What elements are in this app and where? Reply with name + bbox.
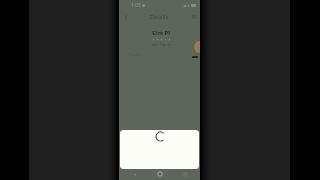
staticText: Details [150,13,169,20]
button[interactable]: Recents [181,170,189,178]
button[interactable]: Add [194,41,200,53]
staticText: Elm Pl [152,29,171,37]
button[interactable]: Home [156,170,164,178]
button[interactable]: More options [189,12,198,21]
staticText: 1:05 [131,2,141,9]
staticText: 4.6 Open [152,42,171,47]
button[interactable]: Back [121,12,130,21]
button[interactable]: Back [130,170,138,178]
